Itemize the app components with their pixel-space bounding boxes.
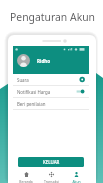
staticText: Beri penilaian [17, 101, 46, 107]
staticText: Notifikasi Harga [17, 89, 51, 95]
staticText: Akun [72, 179, 81, 183]
staticText: Transaksi [44, 179, 59, 183]
staticText: Suara [17, 77, 29, 83]
staticText: KELUAR [43, 159, 60, 165]
button[interactable]: Beranda [13, 168, 39, 183]
staticText: Ridho [37, 58, 51, 64]
button[interactable]: KELUAR [18, 157, 84, 167]
staticText: Beranda [19, 179, 33, 183]
button[interactable]: Akun [64, 168, 89, 183]
other: Notifikasi harga aktif [75, 88, 85, 95]
staticText: Pengaturan Akun [10, 10, 96, 24]
button[interactable]: Suara [13, 74, 89, 86]
other: Suara aktif [75, 76, 85, 83]
button[interactable]: Transaksi [39, 168, 64, 183]
button[interactable]: Beri penilaian [13, 98, 89, 110]
button[interactable]: Notifikasi Harga [13, 86, 89, 98]
